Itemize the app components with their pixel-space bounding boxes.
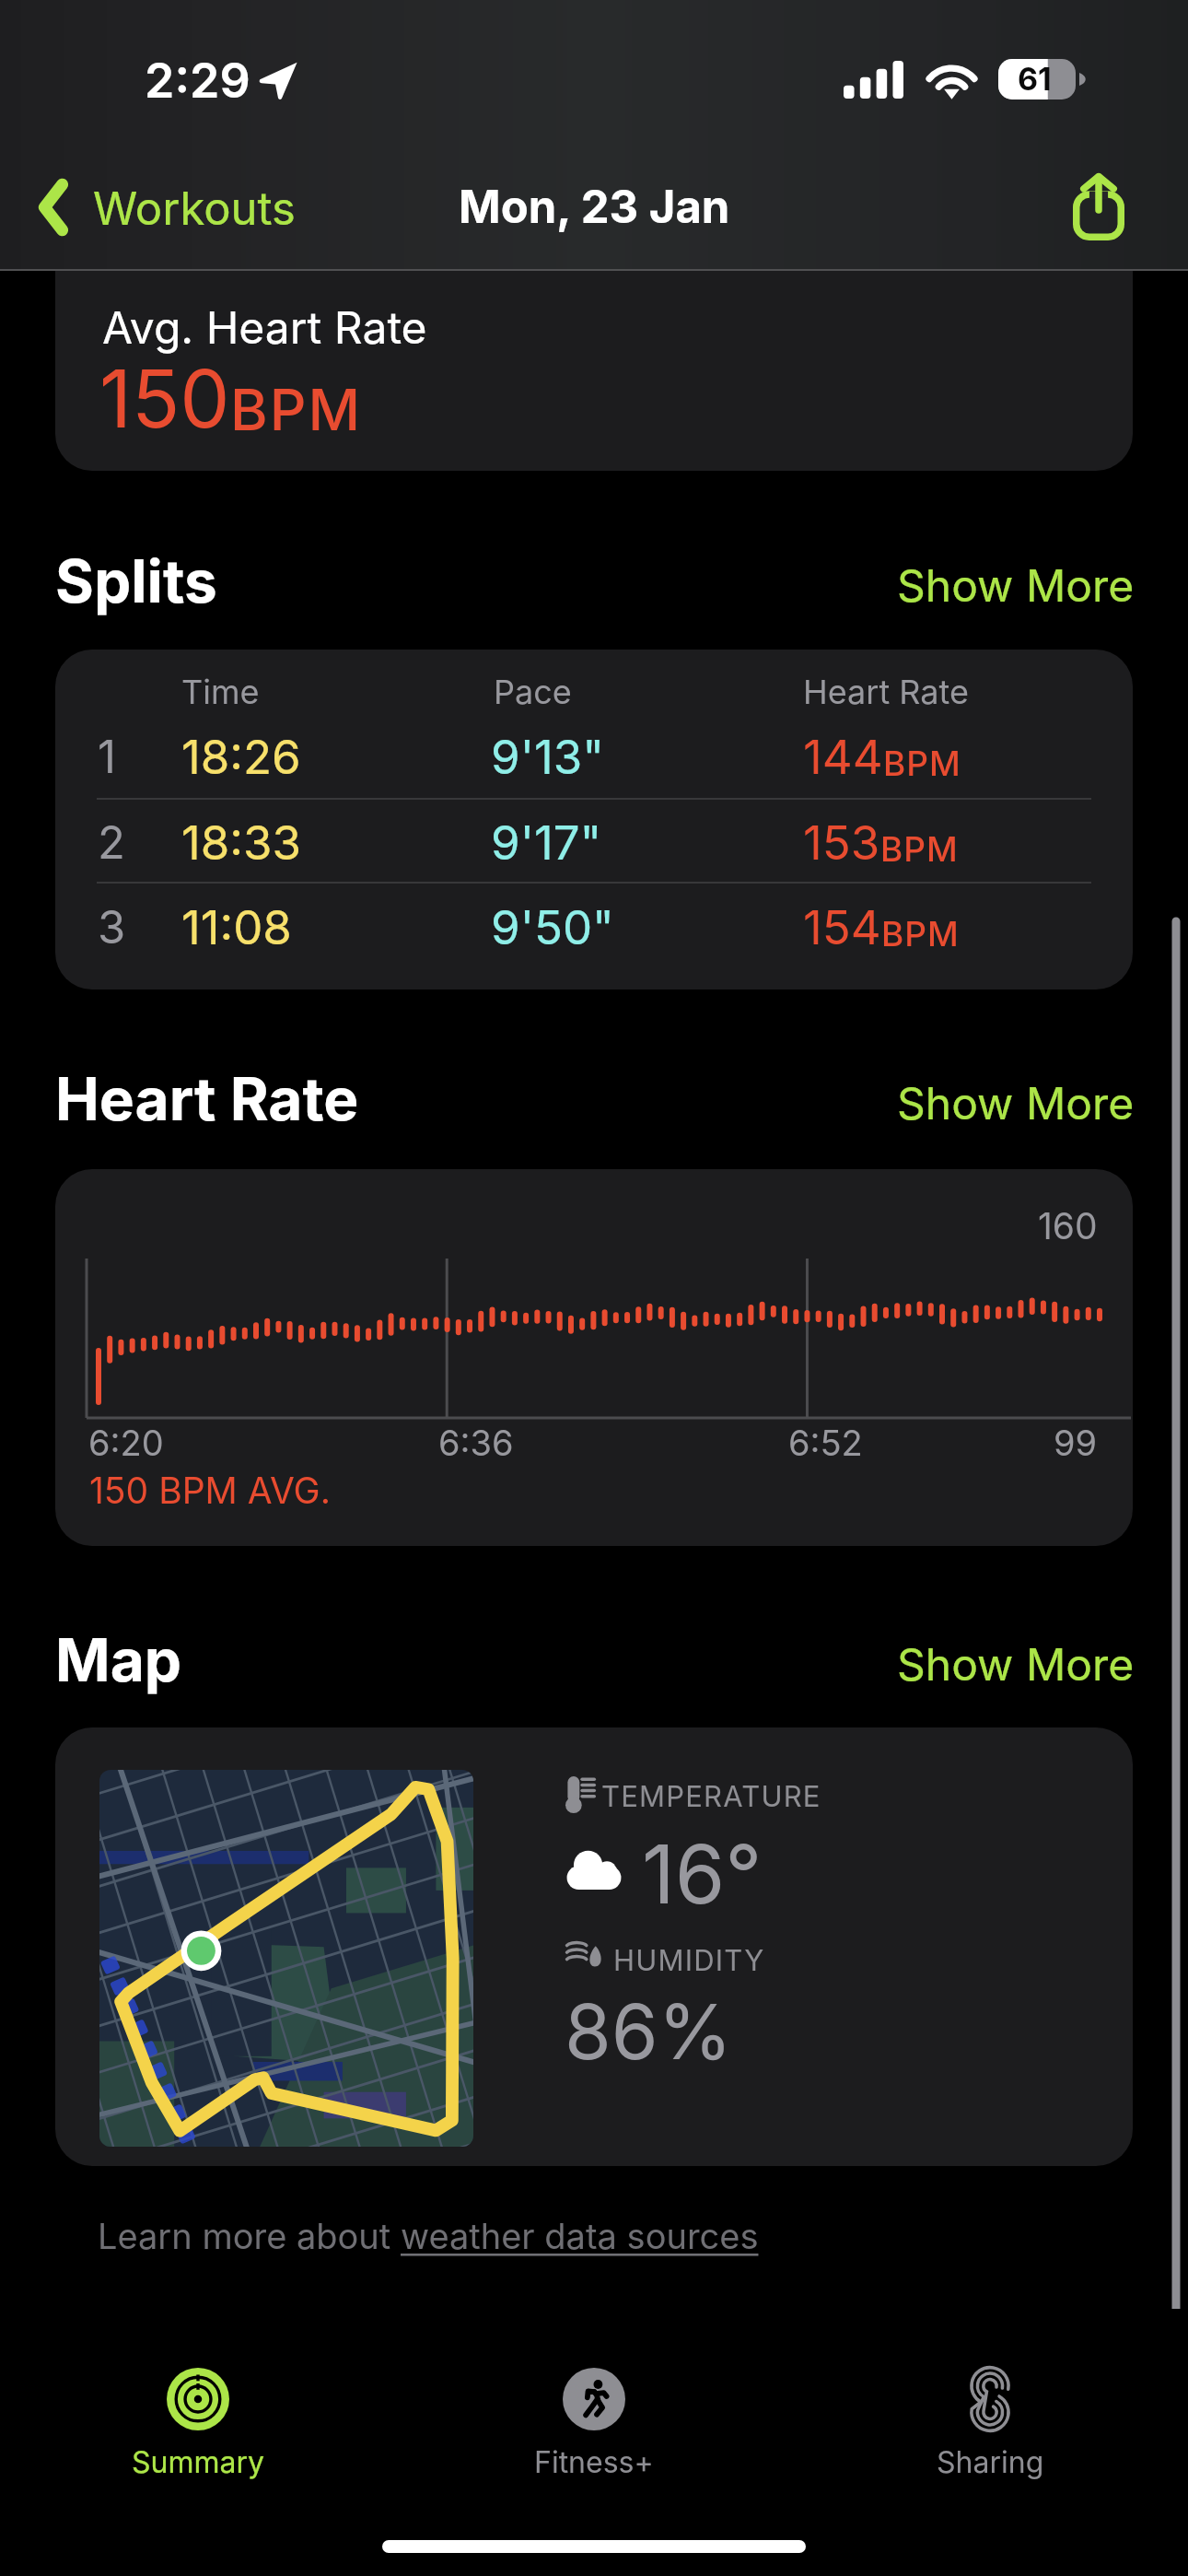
button[interactable]: Learn more about <box>98 2215 759 2257</box>
staticText: 160 <box>1038 1204 1098 1247</box>
staticText: Sharing <box>937 2444 1044 2480</box>
button[interactable]: TEMPERATURE <box>55 1727 1133 2166</box>
button[interactable]: Show More <box>877 549 1155 621</box>
staticText: 9'13" <box>491 729 604 786</box>
staticText: Fitness+ <box>534 2444 654 2480</box>
button[interactable]: 2 <box>55 802 1133 886</box>
staticText: TEMPERATURE <box>601 1779 821 1814</box>
staticText: Workouts <box>93 181 296 236</box>
staticText: 6:20 <box>88 1422 164 1464</box>
button[interactable]: Show More <box>877 1628 1155 1700</box>
staticText: BPM <box>883 743 961 784</box>
button[interactable]: Show More <box>877 1067 1155 1139</box>
staticText: 99 <box>1054 1422 1098 1464</box>
staticText: 61 <box>1018 60 1052 98</box>
staticText: Splits <box>55 545 217 616</box>
staticText: BPM <box>230 375 363 444</box>
staticText: 154 <box>803 899 881 956</box>
staticText: 18:33 <box>181 814 301 872</box>
staticText: 153 <box>803 814 880 872</box>
staticText: 9'50" <box>491 899 614 956</box>
staticText: 150 BPM AVG. <box>89 1469 331 1512</box>
button[interactable]: 1 <box>55 716 1133 801</box>
staticText: Pace <box>494 672 572 712</box>
staticText: Show More <box>897 1637 1135 1691</box>
staticText: 6:52 <box>788 1422 863 1464</box>
staticText: 16° <box>642 1825 763 1923</box>
staticText: 11:08 <box>181 899 292 956</box>
button[interactable]: Share <box>1040 152 1188 263</box>
button[interactable]: 3 <box>55 886 1133 971</box>
staticText: 3 <box>98 900 126 954</box>
staticText: Learn more about <box>98 2215 401 2257</box>
button[interactable]: Sharing <box>792 2362 1188 2486</box>
button[interactable]: 160 <box>55 1169 1133 1546</box>
staticText: 2:29 <box>145 52 250 110</box>
staticText: HUMIDITY <box>613 1943 765 1978</box>
staticText: Map <box>55 1624 182 1695</box>
staticText: Show More <box>897 1076 1135 1130</box>
staticText: Time <box>181 672 260 712</box>
staticText: Heart Rate <box>55 1063 359 1134</box>
staticText: 9'17" <box>491 814 602 872</box>
staticText: 150 <box>99 351 230 447</box>
staticText: 144 <box>803 729 883 786</box>
staticText: Avg. Heart Rate <box>102 300 427 354</box>
staticText: Show More <box>897 558 1135 612</box>
staticText: 18:26 <box>181 729 301 786</box>
button[interactable]: Summary <box>0 2362 396 2486</box>
staticText: BPM <box>881 913 960 954</box>
staticText: Summary <box>132 2444 265 2480</box>
staticText: 6:36 <box>438 1422 514 1464</box>
staticText: BPM <box>880 828 959 870</box>
staticText: 86% <box>565 1986 733 2078</box>
staticText: 1 <box>98 730 116 784</box>
staticText: 2 <box>98 815 125 870</box>
button[interactable]: Avg. Heart Rate <box>55 166 1133 471</box>
button[interactable]: Workouts <box>25 168 316 247</box>
button[interactable]: Fitness+ <box>396 2362 792 2486</box>
staticText: weather data sources <box>401 2215 759 2257</box>
staticText: Heart Rate <box>803 672 969 712</box>
staticText: Mon, 23 Jan <box>459 180 730 234</box>
